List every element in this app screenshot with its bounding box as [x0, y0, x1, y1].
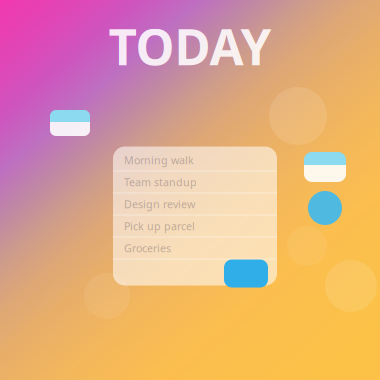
button[interactable]: Reminder: [50, 110, 90, 136]
button[interactable]: Add: [308, 191, 342, 225]
staticText: Design review: [124, 197, 195, 211]
button[interactable]: Add task: [224, 259, 268, 287]
staticText: Groceries: [124, 241, 171, 255]
staticText: TODAY: [108, 13, 271, 79]
staticText: Team standup: [124, 175, 197, 189]
button[interactable]: Weather: [304, 152, 346, 182]
staticText: Morning walk: [124, 153, 194, 167]
staticText: Pick up parcel: [124, 219, 195, 233]
